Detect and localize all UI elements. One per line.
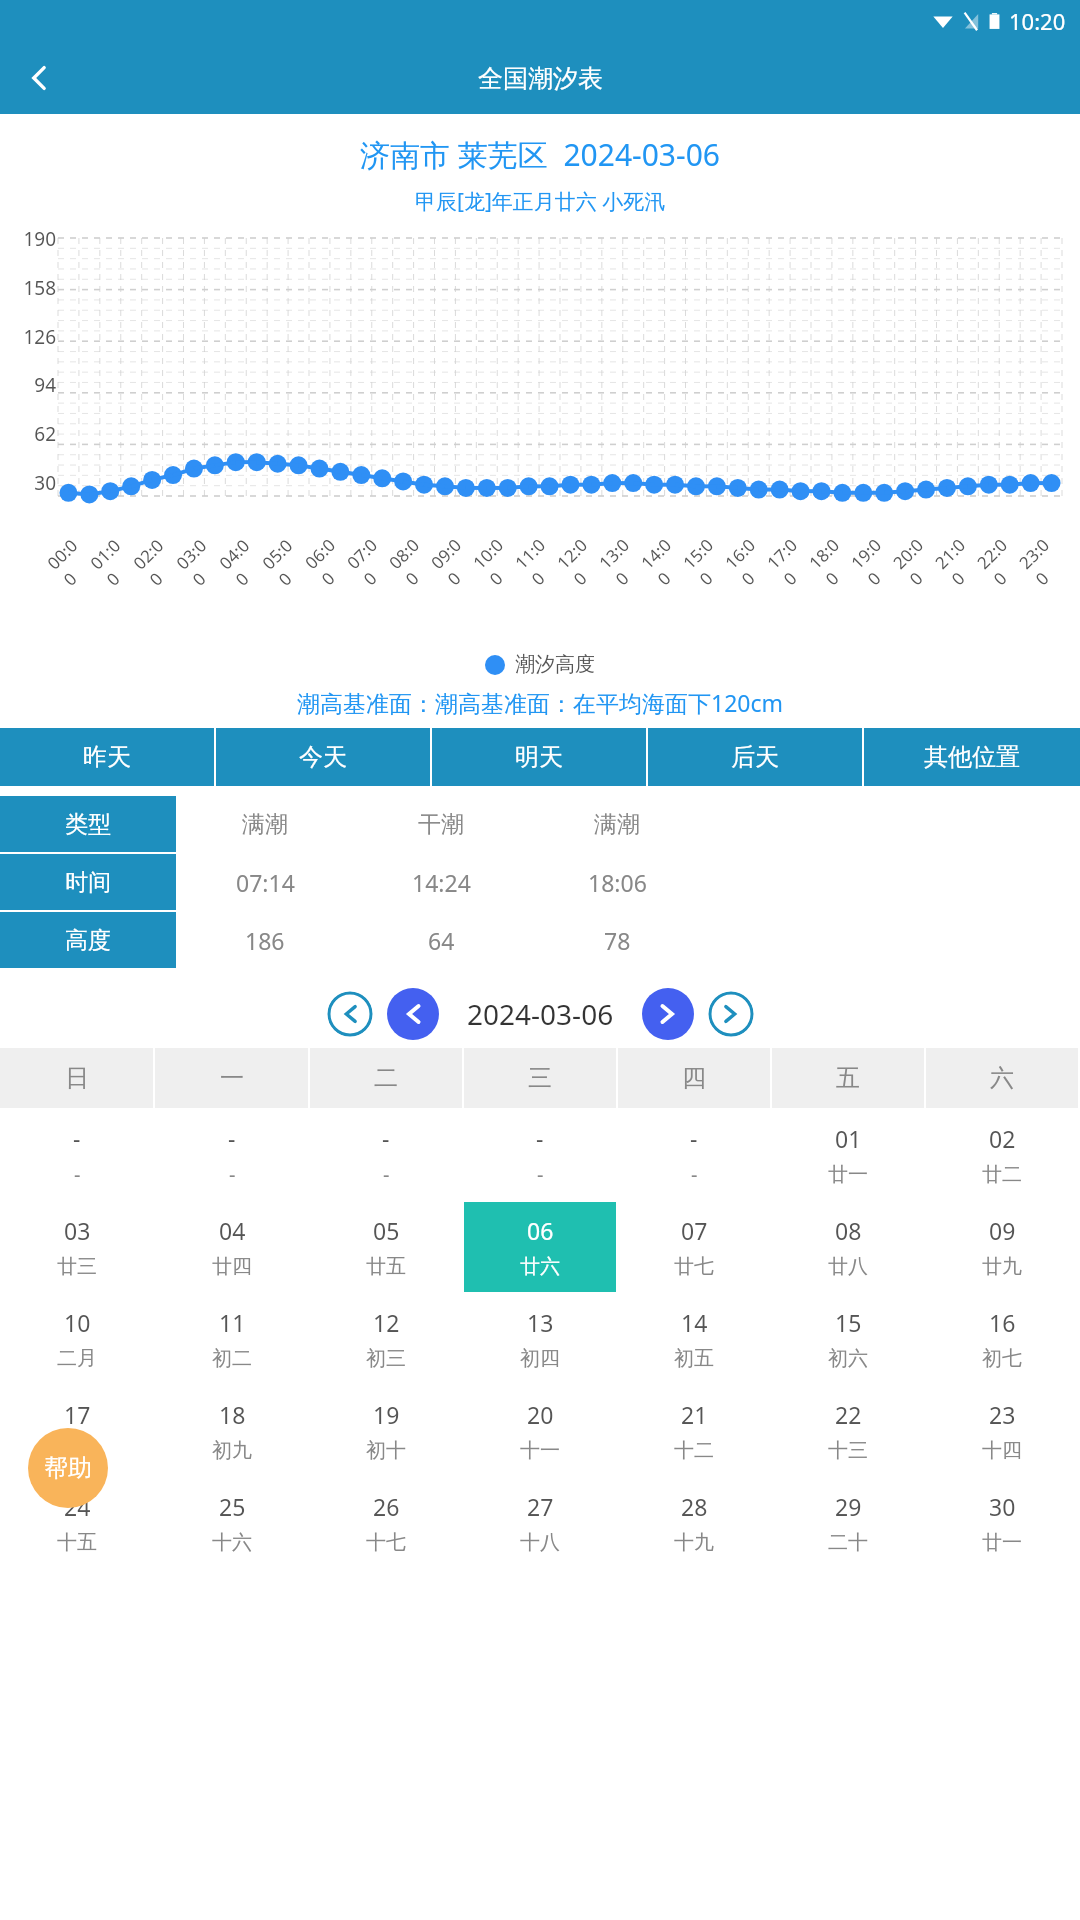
button[interactable]: 今天 bbox=[216, 728, 430, 786]
staticText: 01:00 bbox=[85, 527, 148, 590]
button[interactable]: 20 bbox=[464, 1386, 616, 1476]
button[interactable]: 09 bbox=[926, 1202, 1078, 1292]
staticText: 09 bbox=[989, 1215, 1016, 1246]
staticText: 廿二 bbox=[982, 1162, 1022, 1187]
button[interactable]: 29 bbox=[772, 1478, 924, 1568]
staticText: 2024-03-06 bbox=[467, 995, 614, 1033]
staticText: 廿四 bbox=[212, 1254, 252, 1279]
button[interactable]: - bbox=[464, 1110, 616, 1200]
staticText: 昨天 bbox=[83, 742, 131, 772]
button[interactable]: 25 bbox=[155, 1478, 308, 1568]
staticText: 13:00 bbox=[594, 528, 656, 590]
staticText: 日 bbox=[65, 1063, 89, 1093]
staticText: 10:00 bbox=[468, 528, 530, 590]
button[interactable]: 18 bbox=[155, 1386, 308, 1476]
button[interactable]: 17 bbox=[0, 1386, 153, 1476]
staticText: 04 bbox=[219, 1215, 246, 1246]
staticText: 二十 bbox=[828, 1530, 868, 1555]
staticText: 12 bbox=[373, 1307, 400, 1338]
button[interactable]: 23 bbox=[926, 1386, 1078, 1476]
button[interactable]: 10 bbox=[0, 1294, 153, 1384]
button[interactable]: 昨天 bbox=[0, 728, 214, 786]
staticText: 十二 bbox=[674, 1438, 714, 1463]
staticText: 08:00 bbox=[384, 528, 446, 590]
staticText: 24 bbox=[64, 1491, 91, 1522]
staticText: 09:00 bbox=[426, 528, 488, 590]
button[interactable]: 06 bbox=[464, 1202, 616, 1292]
staticText: 07:14 bbox=[236, 867, 295, 898]
button[interactable]: 19 bbox=[310, 1386, 462, 1476]
button[interactable]: 11 bbox=[155, 1294, 308, 1384]
button[interactable]: 16 bbox=[926, 1294, 1078, 1384]
staticText: 62 bbox=[34, 421, 56, 447]
button[interactable]: 02 bbox=[926, 1110, 1078, 1200]
button[interactable]: 05 bbox=[310, 1202, 462, 1292]
button[interactable]: 15 bbox=[772, 1294, 924, 1384]
button[interactable]: 07 bbox=[618, 1202, 770, 1292]
staticText: 10 bbox=[64, 1307, 91, 1338]
staticText: 十三 bbox=[828, 1438, 868, 1463]
staticText: 潮汐高度 bbox=[515, 652, 595, 677]
staticText: 20 bbox=[527, 1399, 554, 1430]
button[interactable]: Next month bbox=[642, 988, 694, 1040]
staticText: 十一 bbox=[520, 1438, 560, 1463]
button[interactable]: - bbox=[155, 1110, 308, 1200]
staticText: - bbox=[537, 1161, 544, 1188]
button[interactable]: 其他位置 bbox=[864, 728, 1080, 786]
button[interactable]: 后天 bbox=[648, 728, 862, 786]
button[interactable]: 21 bbox=[618, 1386, 770, 1476]
staticText: 29 bbox=[835, 1491, 862, 1522]
button[interactable]: Back bbox=[12, 50, 68, 106]
button[interactable]: - bbox=[618, 1110, 770, 1200]
staticText: 类型 bbox=[65, 810, 111, 839]
button[interactable]: 01 bbox=[772, 1110, 924, 1200]
button[interactable]: 30 bbox=[926, 1478, 1078, 1568]
button[interactable]: 12 bbox=[310, 1294, 462, 1384]
button[interactable]: 28 bbox=[618, 1478, 770, 1568]
staticText: 初九 bbox=[212, 1438, 252, 1463]
staticText: 廿一 bbox=[982, 1530, 1022, 1555]
staticText: 廿六 bbox=[520, 1254, 560, 1279]
button[interactable]: Next year bbox=[708, 991, 754, 1037]
staticText: 18:00 bbox=[804, 528, 866, 590]
staticText: 07 bbox=[681, 1215, 708, 1246]
staticText: 干潮 bbox=[418, 810, 464, 839]
button[interactable]: Previous year bbox=[327, 991, 373, 1037]
button[interactable]: 帮助 bbox=[28, 1428, 108, 1508]
button[interactable]: 22 bbox=[772, 1386, 924, 1476]
staticText: 20:00 bbox=[888, 528, 950, 590]
staticText: 30 bbox=[989, 1491, 1016, 1522]
staticText: 16 bbox=[989, 1307, 1016, 1338]
staticText: - bbox=[228, 1122, 236, 1153]
button[interactable]: - bbox=[310, 1110, 462, 1200]
staticText: - bbox=[383, 1161, 390, 1188]
button[interactable]: 08 bbox=[772, 1202, 924, 1292]
staticText: 06:00 bbox=[300, 528, 362, 590]
button[interactable]: 26 bbox=[310, 1478, 462, 1568]
button[interactable]: 明天 bbox=[432, 728, 646, 786]
staticText: 其他位置 bbox=[924, 742, 1020, 772]
staticText: 16:00 bbox=[720, 528, 782, 590]
staticText: - bbox=[691, 1161, 698, 1188]
staticText: 四 bbox=[682, 1063, 706, 1093]
staticText: 潮高基准面：潮高基准面：在平均海面下120cm bbox=[297, 687, 784, 718]
button[interactable]: 27 bbox=[464, 1478, 616, 1568]
staticText: 济南市 莱芜区 2024-03-06 bbox=[360, 134, 720, 175]
staticText: 十四 bbox=[982, 1438, 1022, 1463]
button[interactable]: 03 bbox=[0, 1202, 153, 1292]
staticText: 27 bbox=[527, 1491, 554, 1522]
button[interactable]: - bbox=[0, 1110, 153, 1200]
button[interactable]: 24 bbox=[0, 1478, 153, 1568]
button[interactable]: 04 bbox=[155, 1202, 308, 1292]
staticText: 11 bbox=[219, 1307, 246, 1338]
button[interactable]: Previous month bbox=[387, 988, 439, 1040]
staticText: 158 bbox=[23, 275, 56, 301]
staticText: 23:00 bbox=[1014, 528, 1076, 590]
staticText: 后天 bbox=[731, 742, 779, 772]
button[interactable]: 13 bbox=[464, 1294, 616, 1384]
staticText: 11:00 bbox=[510, 528, 572, 590]
staticText: 15 bbox=[835, 1307, 862, 1338]
staticText: 18:06 bbox=[588, 867, 647, 898]
staticText: 02:00 bbox=[128, 527, 191, 590]
button[interactable]: 14 bbox=[618, 1294, 770, 1384]
